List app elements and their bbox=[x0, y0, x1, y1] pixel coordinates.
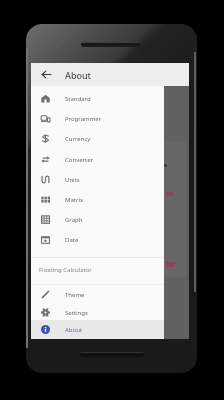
staticText: Settings bbox=[65, 309, 88, 317]
staticText: Graph bbox=[65, 216, 83, 224]
staticText: Converter bbox=[65, 156, 94, 164]
staticText: About bbox=[65, 69, 92, 81]
button[interactable]: About bbox=[31, 320, 164, 339]
staticText: Floating Calculator bbox=[39, 266, 92, 274]
button[interactable]: Settings bbox=[31, 303, 164, 322]
button[interactable]: Programmer bbox=[31, 109, 164, 128]
staticText: Units bbox=[65, 176, 80, 184]
button[interactable]: Currency bbox=[31, 129, 164, 148]
staticText: Matrix bbox=[65, 196, 84, 204]
button[interactable]: Units bbox=[31, 170, 164, 189]
button[interactable]: Date bbox=[31, 230, 164, 249]
staticText: Date bbox=[65, 236, 79, 244]
button[interactable]: Standard bbox=[31, 89, 164, 108]
button[interactable]: Graph bbox=[31, 210, 164, 229]
staticText: Standard bbox=[65, 95, 91, 103]
staticText: About bbox=[65, 326, 83, 334]
staticText: Theme bbox=[65, 291, 85, 299]
button[interactable]: Converter bbox=[31, 150, 164, 169]
button[interactable]: Back bbox=[35, 63, 58, 86]
staticText: Programmer bbox=[65, 115, 102, 123]
button[interactable]: Matrix bbox=[31, 190, 164, 209]
button[interactable]: Theme bbox=[31, 285, 164, 304]
staticText: Currency bbox=[65, 135, 91, 143]
